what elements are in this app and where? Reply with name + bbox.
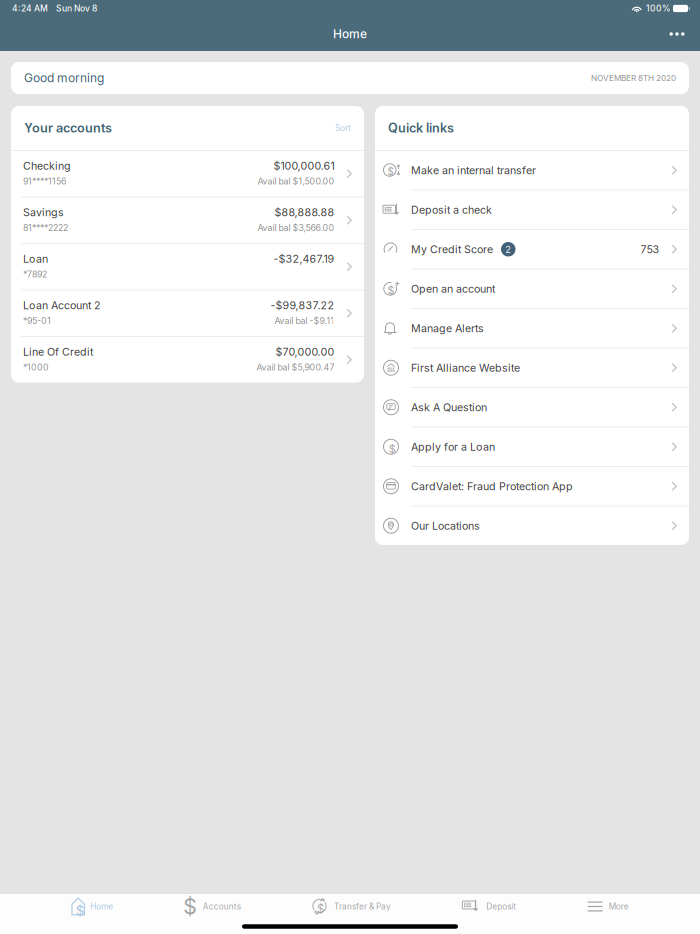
staticText: Home — [333, 27, 367, 41]
staticText: Apply for a Loan — [411, 440, 495, 453]
staticText: $88,888.88 — [274, 206, 334, 219]
staticText: 2 — [505, 244, 511, 255]
staticText: -$32,467.19 — [273, 252, 334, 265]
staticText: 4:24 AM — [12, 3, 48, 14]
staticText: Make an internal transfer — [411, 164, 536, 177]
staticText: $100,000.61 — [273, 159, 334, 172]
button[interactable]: First Alliance Website — [375, 348, 689, 387]
staticText: CardValet: Fraud Protection App — [411, 480, 573, 493]
staticText: Savings — [23, 206, 64, 219]
staticText: Transfer & Pay — [334, 901, 391, 911]
button[interactable]: $ — [185, 892, 241, 920]
button[interactable]: $ — [312, 893, 391, 920]
button[interactable]: Ask A Question — [375, 388, 689, 426]
button[interactable]: Sort — [333, 117, 353, 139]
button[interactable]: $ — [71, 892, 113, 920]
button[interactable]: Deposit — [462, 892, 516, 920]
staticText: $ — [183, 894, 197, 919]
staticText: $ — [388, 165, 394, 177]
staticText: *1000 — [23, 362, 49, 373]
button[interactable]: $ — [375, 151, 689, 189]
button[interactable]: $ — [375, 427, 689, 466]
button[interactable]: CardValet: Fraud Protection App — [375, 467, 689, 505]
staticText: Open an account — [411, 282, 495, 295]
staticText: NOVEMBER 8TH 2020 — [591, 73, 676, 83]
staticText: *7892 — [23, 269, 47, 280]
staticText: -$99,837.22 — [270, 299, 334, 312]
staticText: Avail bal $1,500.00 — [257, 176, 334, 187]
button[interactable]: Manage Alerts — [375, 309, 689, 347]
staticText: Line Of Credit — [23, 345, 93, 358]
staticText: $ — [317, 902, 324, 916]
staticText: Our Locations — [411, 519, 480, 532]
button[interactable]: Savings — [11, 197, 364, 243]
staticText: $ — [76, 903, 85, 919]
staticText: Deposit a check — [411, 203, 492, 216]
button[interactable]: My Credit Score — [375, 230, 689, 268]
staticText: *95-01 — [23, 315, 51, 326]
staticText: Quick links — [388, 120, 454, 136]
button[interactable]: Loan Account 2 — [11, 290, 364, 336]
staticText: Manage Alerts — [411, 322, 484, 335]
button[interactable]: More — [588, 896, 629, 917]
button[interactable]: Our Locations — [375, 506, 689, 545]
staticText: $ — [388, 284, 395, 297]
staticText: 91****1156 — [23, 176, 66, 187]
staticText: Avail bal $5,900.47 — [256, 362, 334, 373]
button[interactable]: $ — [375, 269, 689, 308]
staticText: $ — [389, 442, 396, 455]
staticText: Deposit — [486, 901, 516, 911]
button[interactable]: Deposit a check — [375, 190, 689, 229]
staticText: Ask A Question — [411, 401, 487, 414]
staticText: More — [609, 901, 629, 911]
staticText: Loan — [23, 252, 48, 265]
staticText: Accounts — [203, 901, 241, 911]
staticText: 100% — [646, 3, 670, 14]
button[interactable]: Checking — [11, 151, 364, 196]
staticText: Good morning — [24, 71, 104, 85]
button[interactable]: Line Of Credit — [11, 337, 364, 382]
button[interactable]: More options — [660, 19, 694, 49]
staticText: 753 — [640, 243, 659, 256]
staticText: First Alliance Website — [411, 361, 520, 374]
staticText: Avail bal $3,566.00 — [257, 222, 334, 233]
staticText: Checking — [23, 159, 71, 172]
staticText: Sun Nov 8 — [56, 3, 97, 14]
staticText: Your accounts — [24, 120, 112, 136]
staticText: Sort — [335, 123, 351, 133]
staticText: 81****2222 — [23, 222, 68, 233]
staticText: Loan Account 2 — [23, 299, 101, 312]
staticText: Avail bal -$9.11 — [274, 315, 334, 326]
staticText: Home — [90, 901, 113, 911]
staticText: $70,000.00 — [275, 345, 334, 358]
staticText: My Credit Score — [411, 243, 493, 256]
button[interactable]: Loan — [11, 244, 364, 289]
